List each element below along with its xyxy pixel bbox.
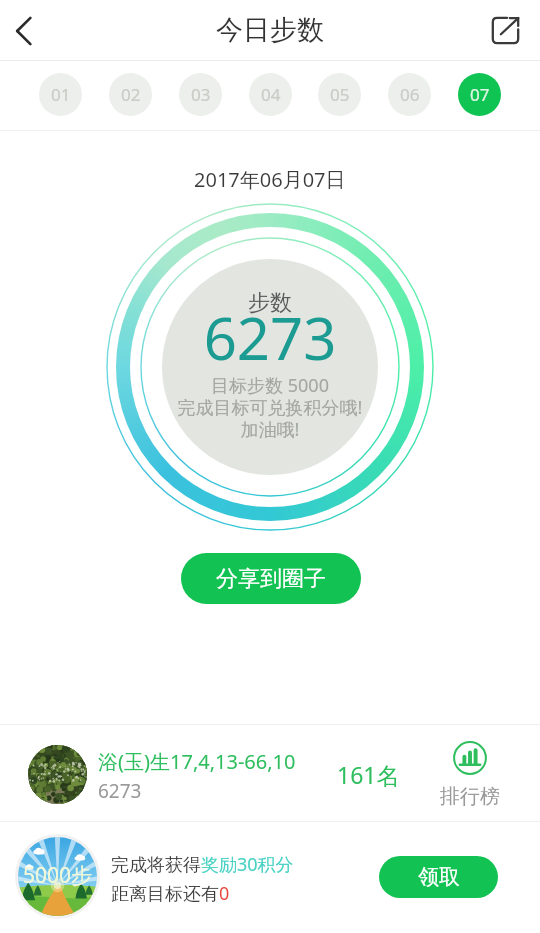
staticText: 2017年06月07日 — [194, 166, 346, 193]
staticText: 步数 — [100, 289, 440, 317]
button[interactable]: 浴(玉)生17,4,13-66,10 — [0, 724, 540, 821]
staticText: 06 — [400, 83, 420, 106]
button[interactable]: 排行榜 — [435, 741, 505, 809]
staticText: 6273 — [98, 778, 142, 804]
staticText: 5000步 — [23, 861, 93, 890]
button[interactable]: 06 — [388, 73, 431, 116]
staticText: 6273 — [100, 298, 440, 377]
button[interactable]: 领取 — [379, 856, 498, 898]
staticText: 完成将获得奖励30积分 — [111, 852, 294, 877]
staticText: 今日步数 — [216, 13, 324, 47]
button[interactable]: 分享到圈子 — [181, 553, 361, 604]
button[interactable]: 05 — [318, 73, 361, 116]
button[interactable]: 02 — [109, 73, 152, 116]
staticText: 161名 — [337, 759, 400, 790]
staticText: 02 — [121, 83, 141, 106]
staticText: 04 — [261, 83, 281, 106]
staticText: 距离目标还有0 — [111, 881, 230, 906]
staticText: 03 — [191, 83, 211, 106]
staticText: 领取 — [418, 864, 460, 890]
staticText: 目标步数 5000 完成目标可兑换积分哦! 加油哦! — [100, 373, 440, 442]
button[interactable]: Back — [0, 0, 52, 61]
staticText: 浴(玉)生17,4,13-66,10 — [98, 748, 296, 775]
button[interactable]: Share — [470, 0, 540, 61]
button[interactable]: 01 — [39, 73, 82, 116]
button[interactable]: 03 — [179, 73, 222, 116]
staticText: 分享到圈子 — [216, 565, 326, 593]
staticText: 05 — [330, 83, 350, 106]
button[interactable]: 07 — [458, 73, 501, 116]
staticText: 07 — [470, 83, 490, 106]
staticText: 01 — [51, 83, 71, 106]
button[interactable]: 04 — [249, 73, 292, 116]
staticText: 排行榜 — [440, 784, 500, 809]
